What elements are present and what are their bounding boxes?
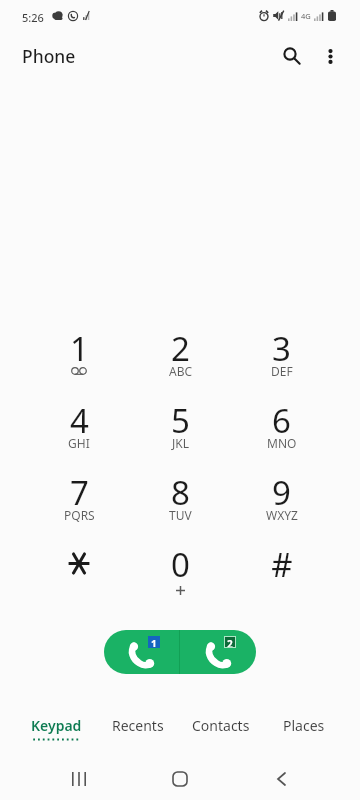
staticText: 9 — [272, 470, 291, 515]
button[interactable]: Call with SIM 1 — [104, 630, 179, 674]
button[interactable]: Recent apps — [55, 755, 103, 800]
staticText: 4G — [301, 11, 311, 21]
staticText: 5 — [171, 398, 190, 443]
button[interactable]: 3 — [231, 315, 332, 387]
staticText: 8 — [171, 470, 190, 515]
staticText: TUV — [169, 507, 192, 523]
staticText: 3 — [272, 326, 291, 371]
button[interactable]: Call with SIM 2 — [180, 630, 256, 674]
button[interactable]: 4 — [28, 387, 130, 459]
button[interactable]: Recents — [97, 705, 179, 745]
staticText: GHI — [68, 435, 90, 451]
staticText: 5:26 — [22, 10, 44, 25]
staticText: 1 — [151, 637, 157, 647]
staticText: 2 — [227, 637, 233, 647]
button[interactable]: 8 — [130, 459, 231, 531]
button[interactable]: More options — [306, 32, 354, 80]
staticText: Places — [283, 716, 325, 735]
staticText: Contacts — [192, 716, 250, 735]
button[interactable]: Home — [156, 755, 204, 800]
button[interactable]: 5 — [130, 387, 231, 459]
staticText: DEF — [271, 363, 293, 379]
button[interactable]: Places — [262, 705, 345, 745]
staticText: 1 — [70, 326, 89, 371]
staticText: 2 — [171, 326, 190, 371]
button[interactable]: 2 — [130, 315, 231, 387]
staticText: Recents — [112, 716, 164, 735]
staticText: 4 — [70, 398, 89, 443]
button[interactable]: 7 — [28, 459, 130, 531]
staticText: WXYZ — [266, 507, 298, 523]
staticText: 6 — [272, 398, 291, 443]
button[interactable]: # — [231, 531, 332, 603]
staticText: ABC — [169, 363, 193, 379]
staticText: PQRS — [64, 507, 95, 523]
staticText: 7 — [70, 470, 89, 515]
button[interactable]: Search — [268, 32, 316, 80]
button[interactable]: Keypad — [15, 705, 97, 745]
staticText: # — [271, 542, 293, 587]
button[interactable]: Contacts — [179, 705, 262, 745]
button[interactable] — [28, 531, 130, 603]
staticText: Phone — [22, 44, 76, 68]
button[interactable]: 1 — [28, 315, 130, 387]
button[interactable]: 9 — [231, 459, 332, 531]
staticText: 0 — [171, 542, 190, 587]
staticText: Keypad — [31, 716, 82, 735]
staticText: JKL — [172, 435, 189, 451]
button[interactable]: 6 — [231, 387, 332, 459]
staticText: MNO — [267, 435, 297, 451]
button[interactable]: 0 — [130, 531, 231, 603]
button[interactable]: Back — [257, 755, 305, 800]
